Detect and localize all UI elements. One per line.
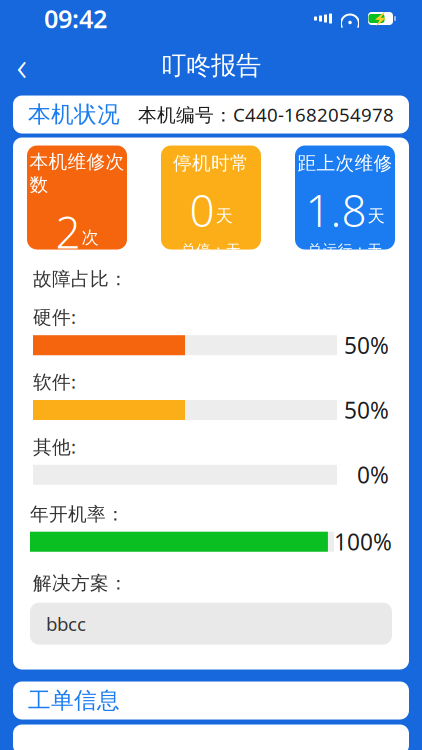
- staticText: 天: [367, 205, 384, 227]
- staticText: 停机时常: [173, 152, 249, 175]
- staticText: 总运行：无: [307, 241, 382, 259]
- staticText: 本机维修次数: [29, 150, 124, 196]
- staticText: 0: [189, 181, 214, 239]
- staticText: 2: [55, 202, 80, 261]
- staticText: 距上次维修: [297, 152, 392, 175]
- staticText: 本机编号：C440-1682054978: [138, 102, 394, 127]
- staticText: 本机状况: [28, 101, 120, 128]
- staticText: 其他:: [33, 434, 76, 459]
- staticText: 1.8: [305, 181, 366, 239]
- button[interactable]: Back: [0, 43, 44, 87]
- staticText: 软件:: [33, 369, 76, 394]
- staticText: 天: [215, 205, 232, 227]
- staticText: 工单信息: [28, 687, 120, 714]
- staticText: 硬件:: [33, 304, 76, 329]
- staticText: 0%: [357, 460, 389, 490]
- staticText: 故障占比：: [33, 267, 128, 290]
- staticText: 09:42: [44, 2, 107, 35]
- staticText: 100%: [334, 527, 392, 557]
- staticText: 50%: [344, 330, 389, 360]
- staticText: 叮咚报告: [161, 50, 261, 81]
- staticText: 解决方案：: [33, 572, 128, 595]
- staticText: 50%: [344, 395, 389, 425]
- staticText: 年开机率：: [30, 503, 125, 526]
- staticText: ⚡: [373, 12, 388, 25]
- staticText: bbcc: [46, 611, 86, 636]
- staticText: ‹: [16, 39, 27, 92]
- staticText: 次: [81, 227, 98, 248]
- staticText: 总停：无: [181, 241, 241, 259]
